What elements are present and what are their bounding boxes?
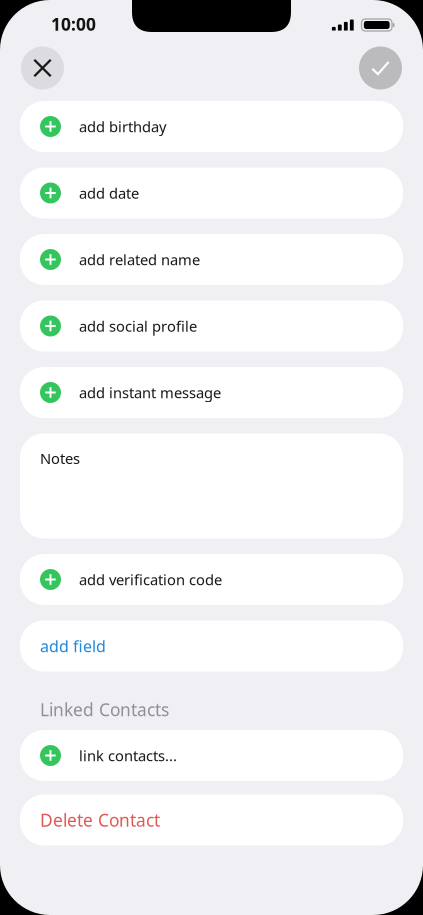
button[interactable]: add related name: [20, 234, 403, 285]
button[interactable]: Cancel: [21, 46, 64, 89]
staticText: add verification code: [79, 570, 222, 589]
button[interactable]: add social profile: [20, 300, 403, 351]
button[interactable]: add date: [20, 167, 403, 218]
staticText: add related name: [79, 250, 200, 269]
staticText: link contacts...: [79, 746, 177, 765]
staticText: add social profile: [79, 316, 197, 336]
staticText: add instant message: [79, 383, 221, 402]
button[interactable]: add birthday: [20, 101, 403, 152]
staticText: Delete Contact: [40, 808, 160, 831]
button[interactable]: link contacts...: [20, 730, 403, 781]
staticText: Notes: [40, 448, 80, 468]
staticText: Linked Contacts: [40, 698, 169, 721]
staticText: 10:00: [51, 12, 96, 35]
staticText: add field: [40, 635, 106, 657]
button[interactable]: add instant message: [20, 367, 403, 418]
button[interactable]: Done: [359, 46, 402, 89]
staticText: add date: [79, 183, 139, 203]
button[interactable]: add field: [20, 620, 403, 671]
staticText: add birthday: [79, 117, 166, 136]
button[interactable]: Delete Contact: [20, 794, 403, 845]
button[interactable]: add verification code: [20, 554, 403, 605]
